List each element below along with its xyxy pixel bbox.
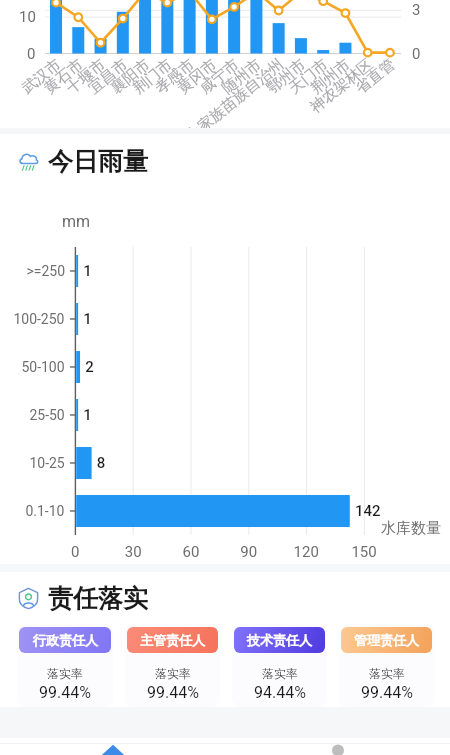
staticText: 94.44% [254, 683, 306, 702]
button[interactable]: 我的 [225, 744, 450, 755]
staticText: 技术责任人 [247, 632, 312, 648]
button[interactable]: 行政责任人 [17, 624, 113, 707]
staticText: 主管责任人 [140, 632, 205, 648]
button[interactable]: 技术责任人 [232, 624, 327, 707]
staticText: 管理责任人 [354, 632, 419, 648]
staticText: 99.44% [39, 683, 91, 702]
button[interactable]: 首页 [0, 744, 225, 755]
button[interactable]: 主管责任人 [125, 624, 220, 707]
staticText: 落实率 [369, 666, 405, 681]
staticText: 落实率 [155, 666, 191, 681]
button[interactable]: 管理责任人 [339, 624, 434, 707]
staticText: 责任落实 [48, 583, 148, 614]
staticText: 今日雨量 [48, 146, 148, 177]
staticText: 行政责任人 [33, 632, 98, 648]
staticText: 落实率 [47, 666, 83, 681]
staticText: 99.44% [147, 683, 199, 702]
staticText: 99.44% [361, 683, 413, 702]
staticText: 落实率 [262, 666, 298, 681]
